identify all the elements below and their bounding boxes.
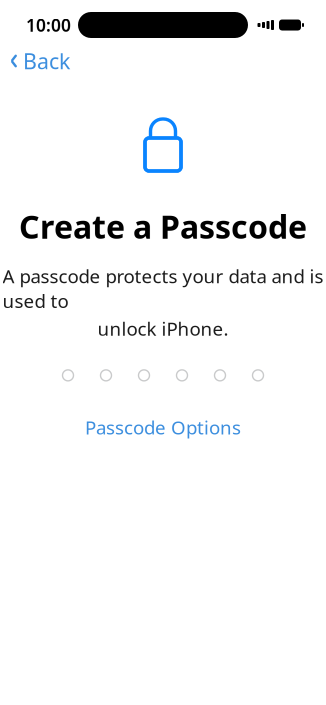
staticText: Create a Passcode bbox=[19, 205, 307, 247]
staticText: Passcode Options bbox=[85, 415, 241, 440]
staticText: A passcode protects your data and is use… bbox=[2, 263, 323, 313]
staticText: 10:00 bbox=[26, 13, 71, 36]
button[interactable]: Back bbox=[0, 39, 70, 83]
staticText: Back bbox=[23, 47, 70, 75]
staticText: unlock iPhone. bbox=[97, 316, 228, 341]
button[interactable]: Passcode Options bbox=[75, 411, 251, 444]
